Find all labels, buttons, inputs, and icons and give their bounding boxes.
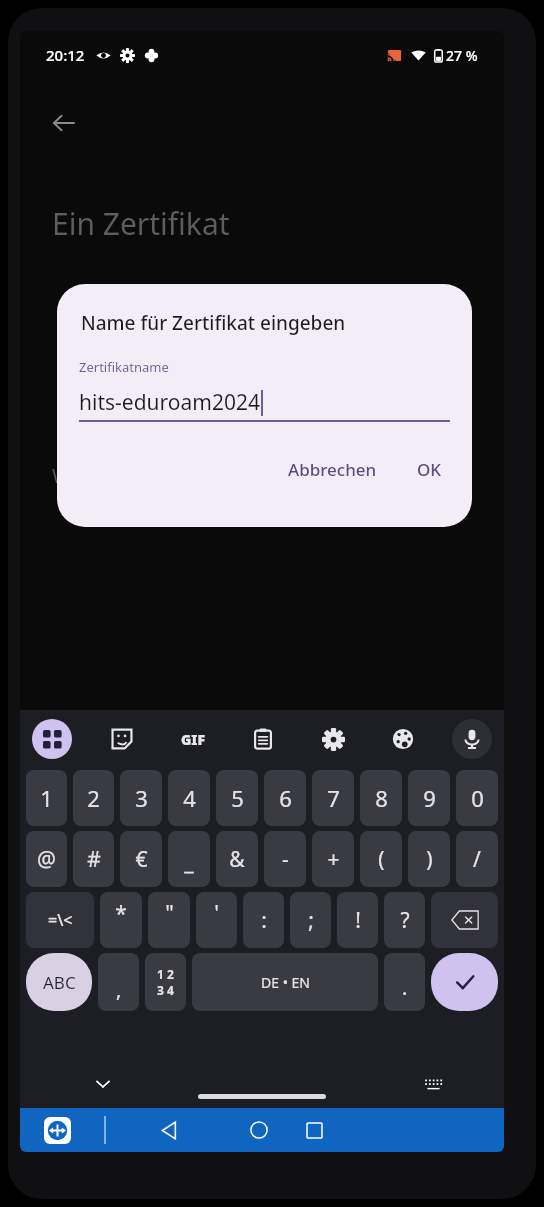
button[interactable]: ABC (26, 953, 92, 1011)
button[interactable]: Recent apps (294, 1110, 334, 1150)
button[interactable]: € (120, 831, 162, 887)
button[interactable]: : (243, 892, 284, 948)
staticText: & (229, 845, 245, 874)
staticText: DE • EN (261, 973, 310, 992)
button[interactable]: ; (290, 892, 331, 948)
staticText: hits-eduroam2024 (79, 388, 260, 417)
staticText: 9 (423, 783, 436, 813)
staticText: 7 (327, 783, 340, 813)
staticText: ! (355, 906, 361, 935)
button[interactable]: Voice input (452, 719, 492, 759)
staticText: , (116, 976, 122, 1003)
staticText: : (261, 906, 267, 935)
button[interactable]: Settings (312, 718, 354, 760)
staticText: 6 (279, 783, 292, 813)
button[interactable]: , (98, 953, 139, 1011)
button[interactable]: Stickers (101, 718, 143, 760)
button[interactable]: & (216, 831, 258, 887)
button[interactable]: 1 (26, 770, 67, 826)
button[interactable]: Abbrechen (276, 449, 389, 490)
staticText: 1 2 (157, 966, 174, 982)
staticText: " (165, 899, 174, 928)
button[interactable]: Enter (431, 953, 498, 1011)
button[interactable]: - (264, 831, 306, 887)
button[interactable]: Keyboard switcher (32, 719, 72, 759)
button[interactable]: 7 (312, 770, 354, 826)
staticText: ) (426, 845, 433, 874)
button[interactable]: 0 (456, 770, 498, 826)
button[interactable]: Home (239, 1110, 279, 1150)
staticText: 2 (87, 783, 100, 813)
staticText: =\< (48, 909, 73, 931)
staticText: 1 (40, 783, 53, 813)
staticText: ( (378, 845, 385, 874)
staticText: 4 (183, 783, 196, 813)
button[interactable]: Back (148, 1110, 188, 1150)
button[interactable]: # (73, 831, 114, 887)
button[interactable]: 9 (408, 770, 450, 826)
button[interactable]: 8 (360, 770, 402, 826)
button[interactable]: " (148, 892, 190, 948)
button[interactable]: GIF (172, 718, 214, 760)
staticText: # (87, 845, 101, 874)
button[interactable]: Numbers (145, 953, 186, 1011)
button[interactable]: =\< (26, 892, 94, 948)
staticText: 27 % (446, 46, 478, 65)
staticText: Ein Zertifikat (52, 203, 230, 244)
staticText: 3 (135, 783, 148, 813)
staticText: ; (308, 906, 314, 935)
staticText: WLAN-Zertifikat (52, 462, 201, 489)
staticText: 3 4 (157, 982, 174, 998)
staticText: ' (214, 899, 219, 928)
button[interactable]: * (100, 892, 142, 948)
button[interactable]: . (384, 953, 425, 1011)
button[interactable]: 5 (216, 770, 258, 826)
button[interactable]: Themes (382, 718, 424, 760)
staticText: € (135, 845, 148, 874)
staticText: Zertifikatname (79, 358, 169, 376)
button[interactable]: Hide keyboard (86, 1067, 120, 1101)
staticText: GIF (181, 730, 206, 749)
staticText: * (115, 899, 127, 928)
button[interactable]: + (312, 831, 354, 887)
staticText: ABC (43, 971, 76, 994)
staticText: 8 (375, 783, 388, 813)
staticText: 20:12 (46, 45, 85, 65)
button[interactable]: ! (337, 892, 378, 948)
staticText: Abbrechen (288, 458, 377, 481)
button[interactable]: / (456, 831, 498, 887)
button[interactable]: Clipboard (242, 718, 284, 760)
button[interactable]: ) (408, 831, 450, 887)
button[interactable]: hits-eduroam2024 (79, 384, 450, 420)
button[interactable]: Switch input method (416, 1067, 450, 1101)
button[interactable]: OK (405, 449, 454, 490)
button[interactable]: 4 (168, 770, 210, 826)
staticText: _ (184, 848, 194, 877)
button[interactable]: _ (168, 831, 210, 887)
staticText: ? (400, 906, 410, 935)
button[interactable]: 3 (120, 770, 162, 826)
staticText: / (473, 845, 481, 874)
staticText: Name für Zertifikat eingeben (81, 310, 346, 336)
button[interactable]: ' (196, 892, 237, 948)
button[interactable]: DE • EN (192, 953, 378, 1011)
button[interactable]: 2 (73, 770, 114, 826)
button[interactable]: Backspace (431, 892, 498, 948)
staticText: + (327, 845, 340, 874)
button[interactable]: TeamViewer (42, 1115, 72, 1145)
button[interactable]: 6 (264, 770, 306, 826)
staticText: - (282, 845, 289, 874)
staticText: . (402, 974, 408, 1001)
button[interactable]: ? (384, 892, 425, 948)
staticText: OK (417, 458, 442, 481)
staticText: 5 (231, 783, 244, 813)
staticText: 0 (471, 783, 484, 813)
staticText: @ (37, 845, 56, 874)
button[interactable]: Back (42, 101, 86, 145)
button[interactable]: ( (360, 831, 402, 887)
button[interactable]: @ (26, 831, 67, 887)
